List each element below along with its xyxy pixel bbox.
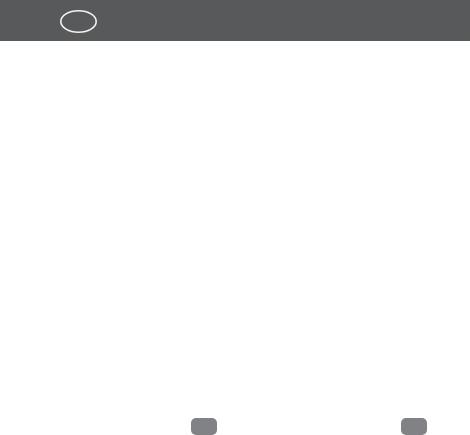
button[interactable]: Indicator: [401, 418, 427, 435]
button[interactable]: Indicator: [191, 418, 217, 435]
button[interactable]: Profile: [60, 10, 97, 33]
